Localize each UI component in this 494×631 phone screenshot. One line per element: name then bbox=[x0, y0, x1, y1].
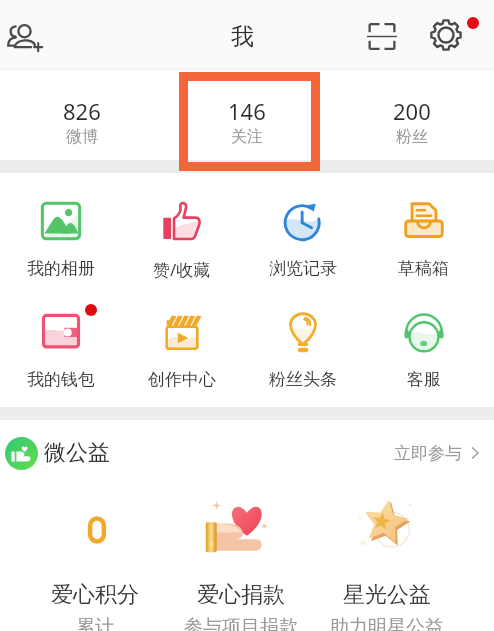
staticText: 微公益 bbox=[44, 439, 110, 467]
staticText: 爱心捐款 bbox=[197, 581, 285, 609]
staticText: 浏览记录 bbox=[269, 258, 337, 279]
staticText: 微博 bbox=[66, 127, 98, 147]
button[interactable]: 浏览记录 bbox=[242, 194, 363, 279]
button[interactable]: 草稿箱 bbox=[363, 194, 484, 279]
button[interactable]: 创作中心 bbox=[121, 305, 242, 390]
staticText: 146 bbox=[228, 96, 266, 126]
staticText: 爱心积分 bbox=[51, 581, 139, 609]
button[interactable]: Scan bbox=[356, 9, 408, 61]
staticText: 星光公益 bbox=[343, 581, 431, 609]
button[interactable]: 微公益 bbox=[0, 420, 494, 486]
button[interactable]: 爱心积分 bbox=[22, 506, 168, 631]
button[interactable]: 粉丝头条 bbox=[242, 305, 363, 390]
button[interactable]: 826 bbox=[0, 70, 164, 160]
staticText: 我 bbox=[231, 22, 254, 51]
staticText: 累计 bbox=[76, 615, 114, 631]
button[interactable]: 我的相册 bbox=[0, 194, 121, 279]
staticText: 参与项目捐款 bbox=[184, 615, 298, 631]
button[interactable]: 146 bbox=[164, 70, 329, 160]
staticText: 助力明星公益 bbox=[330, 615, 444, 631]
staticText: 200 bbox=[393, 96, 431, 126]
staticText: 粉丝 bbox=[396, 127, 428, 147]
button[interactable]: 客服 bbox=[363, 305, 484, 390]
button[interactable]: 200 bbox=[329, 70, 494, 160]
staticText: 客服 bbox=[407, 369, 441, 390]
staticText: 草稿箱 bbox=[398, 258, 449, 279]
staticText: 我的钱包 bbox=[27, 369, 95, 390]
staticText: 赞/收藏 bbox=[153, 258, 211, 281]
button[interactable]: 星光公益 bbox=[314, 506, 460, 631]
staticText: 粉丝头条 bbox=[269, 369, 337, 390]
button[interactable]: Add friends bbox=[0, 7, 52, 63]
button[interactable]: 赞/收藏 bbox=[121, 194, 242, 281]
staticText: 关注 bbox=[231, 127, 263, 147]
staticText: 创作中心 bbox=[148, 369, 216, 390]
staticText: 我的相册 bbox=[27, 258, 95, 279]
staticText: 立即参与 bbox=[394, 443, 462, 464]
button[interactable]: Settings bbox=[418, 7, 474, 63]
staticText: 826 bbox=[63, 96, 101, 126]
button[interactable]: 我的钱包 bbox=[0, 305, 121, 390]
button[interactable]: 爱心捐款 bbox=[168, 506, 314, 631]
